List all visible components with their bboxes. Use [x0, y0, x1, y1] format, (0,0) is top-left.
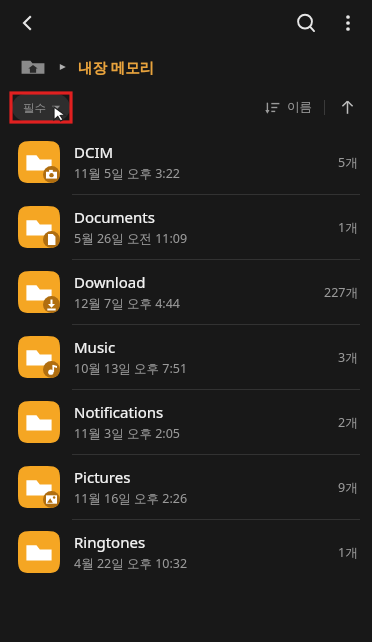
staticText: 3개: [338, 349, 358, 366]
staticText: 1개: [338, 219, 358, 236]
staticText: 227개: [324, 284, 358, 301]
staticText: Download: [74, 272, 146, 292]
button[interactable]: 이름: [263, 99, 314, 115]
staticText: 9개: [338, 479, 358, 496]
button[interactable]: Download: [0, 260, 372, 324]
staticText: Ringtones: [74, 532, 146, 552]
staticText: 12월 7일 오후 4:44: [74, 295, 181, 312]
button[interactable]: Documents: [0, 195, 372, 259]
button[interactable]: Search: [284, 1, 328, 45]
staticText: 11월 3일 오후 2:05: [74, 425, 181, 442]
button[interactable]: Back: [6, 1, 50, 45]
button[interactable]: Internal storage root: [20, 54, 46, 80]
staticText: Music: [74, 337, 116, 357]
staticText: 4월 22일 오후 10:32: [74, 555, 188, 572]
staticText: 이름: [287, 99, 312, 115]
staticText: DCIM: [74, 142, 114, 162]
staticText: 2개: [338, 414, 358, 431]
button[interactable]: Ringtones: [0, 520, 372, 584]
staticText: 1개: [338, 544, 358, 561]
staticText: 필수: [23, 101, 46, 115]
button[interactable]: 내장 메모리: [78, 57, 155, 77]
staticText: 5월 26일 오전 11:09: [74, 230, 188, 247]
staticText: 10월 13일 오후 7:51: [74, 360, 188, 377]
staticText: 11월 16일 오후 2:26: [74, 490, 188, 507]
staticText: 5개: [338, 154, 358, 171]
staticText: Notifications: [74, 402, 164, 422]
button[interactable]: More options: [328, 3, 368, 43]
button[interactable]: Music: [0, 325, 372, 389]
button[interactable]: DCIM: [0, 130, 372, 194]
button[interactable]: 필수: [12, 94, 70, 121]
staticText: Documents: [74, 207, 155, 227]
staticText: 11월 5일 오후 3:22: [74, 165, 181, 182]
button[interactable]: Pictures: [0, 455, 372, 519]
staticText: Pictures: [74, 467, 131, 487]
button[interactable]: Sort ascending: [334, 94, 360, 120]
button[interactable]: Notifications: [0, 390, 372, 454]
